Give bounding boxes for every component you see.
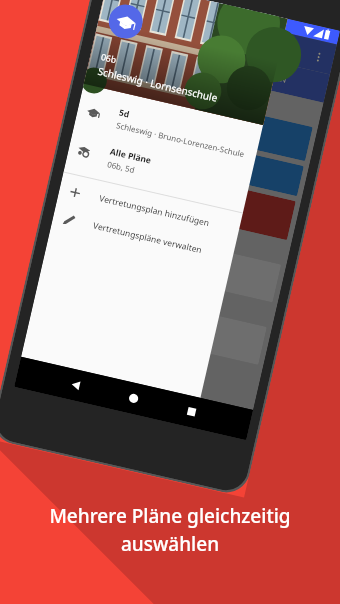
staticText: Mehrere Pläne gleichzeitig auswählen [0,503,340,557]
staticText: 5d [118,106,131,121]
staticText: NACHRICHTEN [231,62,288,85]
staticText: Vertretungsplan hinzufügen [98,192,211,229]
staticText: Schleswig · Bruno-Lorenzen-Schule [115,119,246,159]
staticText: Alle Pläne [109,145,152,167]
button[interactable]: Vertretungsplan hinzufügen [56,175,242,244]
button[interactable]: Vertretungspläne verwalten [50,203,236,271]
other: Open navigation drawer [109,3,123,17]
staticText: Schleswig [135,7,188,33]
staticText: PLAN [132,39,154,54]
staticText: 06b, 5d [106,158,136,175]
staticText: 06b [100,51,118,66]
staticText: Schleswig · Lornsenschule [96,64,219,105]
button[interactable]: Alle Pläne [64,129,253,209]
staticText: Vertretungspläne verwalten [92,220,204,256]
button[interactable]: 5d [73,90,262,170]
other: More options [310,48,327,65]
